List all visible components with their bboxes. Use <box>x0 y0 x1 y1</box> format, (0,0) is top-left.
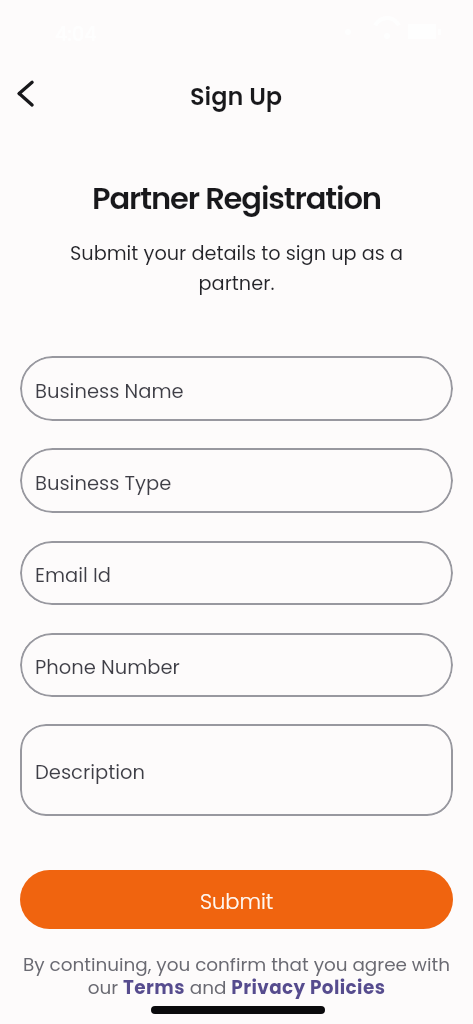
button[interactable]: Email Id <box>20 541 453 605</box>
button[interactable]: Business Name <box>20 356 453 421</box>
staticText: Business Type <box>35 470 172 497</box>
staticText: Sign Up <box>190 80 283 114</box>
staticText: Description <box>35 759 145 786</box>
staticText: Submit your details to sign up as a part… <box>56 240 417 296</box>
button[interactable]: Description <box>20 724 453 816</box>
button[interactable]: Business Type <box>20 448 453 513</box>
button[interactable]: Submit <box>20 870 453 929</box>
button[interactable]: Phone Number <box>20 633 453 697</box>
staticText: By continuing, you confirm that you agre… <box>14 952 459 1000</box>
staticText: Submit <box>200 887 274 916</box>
staticText: Partner Registration <box>92 177 381 220</box>
staticText: Business Name <box>35 378 184 405</box>
button[interactable]: Terms <box>121 977 187 1000</box>
staticText: Phone Number <box>35 654 180 681</box>
button[interactable]: Back <box>4 72 47 115</box>
button[interactable]: Privacy Policies <box>229 977 386 1000</box>
staticText: Email Id <box>35 562 112 589</box>
